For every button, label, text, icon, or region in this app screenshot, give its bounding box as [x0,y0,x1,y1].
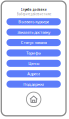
staticText: Заказать доставку [17,29,50,35]
staticText: Статус заказа [21,40,47,45]
staticText: Вызвать курьера [18,19,49,24]
button[interactable]: Тарифы [6,49,61,56]
button[interactable]: Статус заказа [6,39,61,46]
staticText: Цены [28,61,39,66]
button[interactable]: Адреса [6,70,61,77]
staticText: Служба доставки [21,8,47,11]
button[interactable]: Вызвать курьера [6,18,61,25]
staticText: Тарифы [26,50,41,56]
button[interactable]: Поддержка [6,81,61,88]
button[interactable]: Цены [6,60,61,67]
staticText: Адреса [27,71,40,76]
staticText: Поддержка [23,81,44,87]
staticText: Выберите действие ниже [17,12,51,16]
button[interactable]: Заказать доставку [6,29,61,36]
button[interactable]: Home [26,92,41,107]
